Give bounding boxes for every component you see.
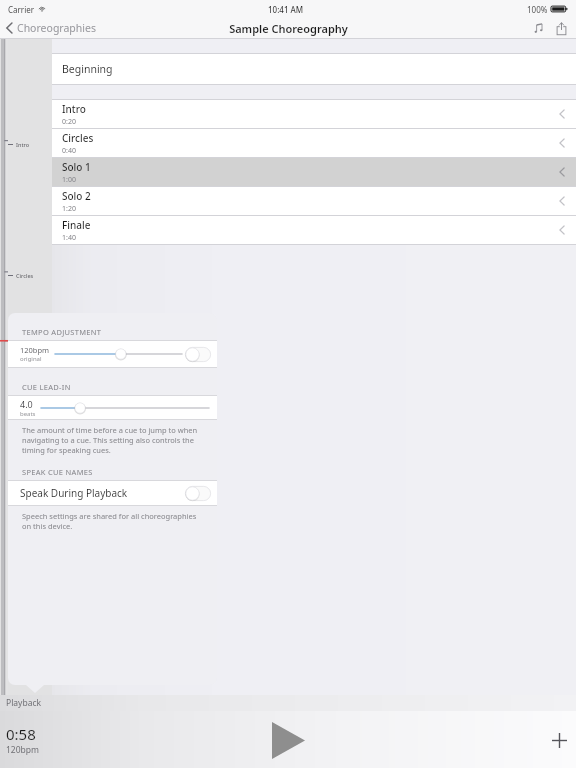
staticText: Circles [62,131,94,145]
staticText: Intro [16,141,30,148]
button[interactable]: Finale [52,216,576,244]
staticText: beats [20,410,36,418]
staticText: Speech settings are shared for all chore… [22,511,203,531]
staticText: CUE LEAD-IN [22,382,71,392]
staticText: Sample Choreography [229,21,348,36]
button[interactable]: Play [264,718,312,762]
staticText: 0:20 [62,117,76,127]
staticText: Circles [16,272,34,279]
staticText: The amount of time before a cue to jump … [22,425,203,455]
button[interactable]: Toggle [185,486,211,501]
staticText: 0:58 [6,724,36,744]
staticText: Choreographies [17,21,96,35]
staticText: Playback [6,697,42,709]
staticText: 10:41 AM [268,4,304,15]
button[interactable]: Details for Intro [554,102,570,126]
button[interactable]: Share [550,18,572,38]
staticText: 1:40 [62,233,76,243]
staticText: original [20,355,42,363]
staticText: Carrier [8,4,35,15]
button[interactable]: Speak During Playback [8,481,217,505]
staticText: 120bpm [20,345,50,355]
button[interactable]: Choreographies [0,18,104,38]
staticText: 1:00 [62,175,76,185]
button[interactable]: Details for Finale [554,218,570,242]
staticText: 120bpm [6,744,39,756]
staticText: Solo 1 [62,160,91,174]
button[interactable]: Add [542,723,576,757]
button[interactable]: Details for Solo 1 [554,160,570,184]
staticText: Finale [62,218,91,232]
button[interactable]: Circles [52,129,576,157]
staticText: 100% [527,4,548,15]
staticText: TEMPO ADJUSTMENT [22,327,102,337]
button[interactable]: Toggle [185,347,211,362]
button[interactable]: Details for Circles [554,131,570,155]
staticText: Intro [62,102,86,116]
staticText: 4.0 [20,398,33,410]
button[interactable]: Beginning [52,54,576,84]
button[interactable]: Solo 2 [52,187,576,215]
button[interactable]: Music [528,18,550,38]
staticText: Speak During Playback [20,486,185,500]
button[interactable]: Solo 1 [52,158,576,186]
staticText: 0:40 [62,146,76,156]
staticText: Solo 2 [62,189,91,203]
staticText: 1:20 [62,204,76,214]
staticText: Beginning [62,62,113,76]
button[interactable]: Cue lead-in slider [41,398,209,418]
button[interactable]: Intro [52,100,576,128]
button[interactable]: 0:58 [6,724,39,756]
staticText: SPEAK CUE NAMES [22,467,93,477]
button[interactable]: Tempo slider [55,343,182,365]
button[interactable]: Details for Solo 2 [554,189,570,213]
